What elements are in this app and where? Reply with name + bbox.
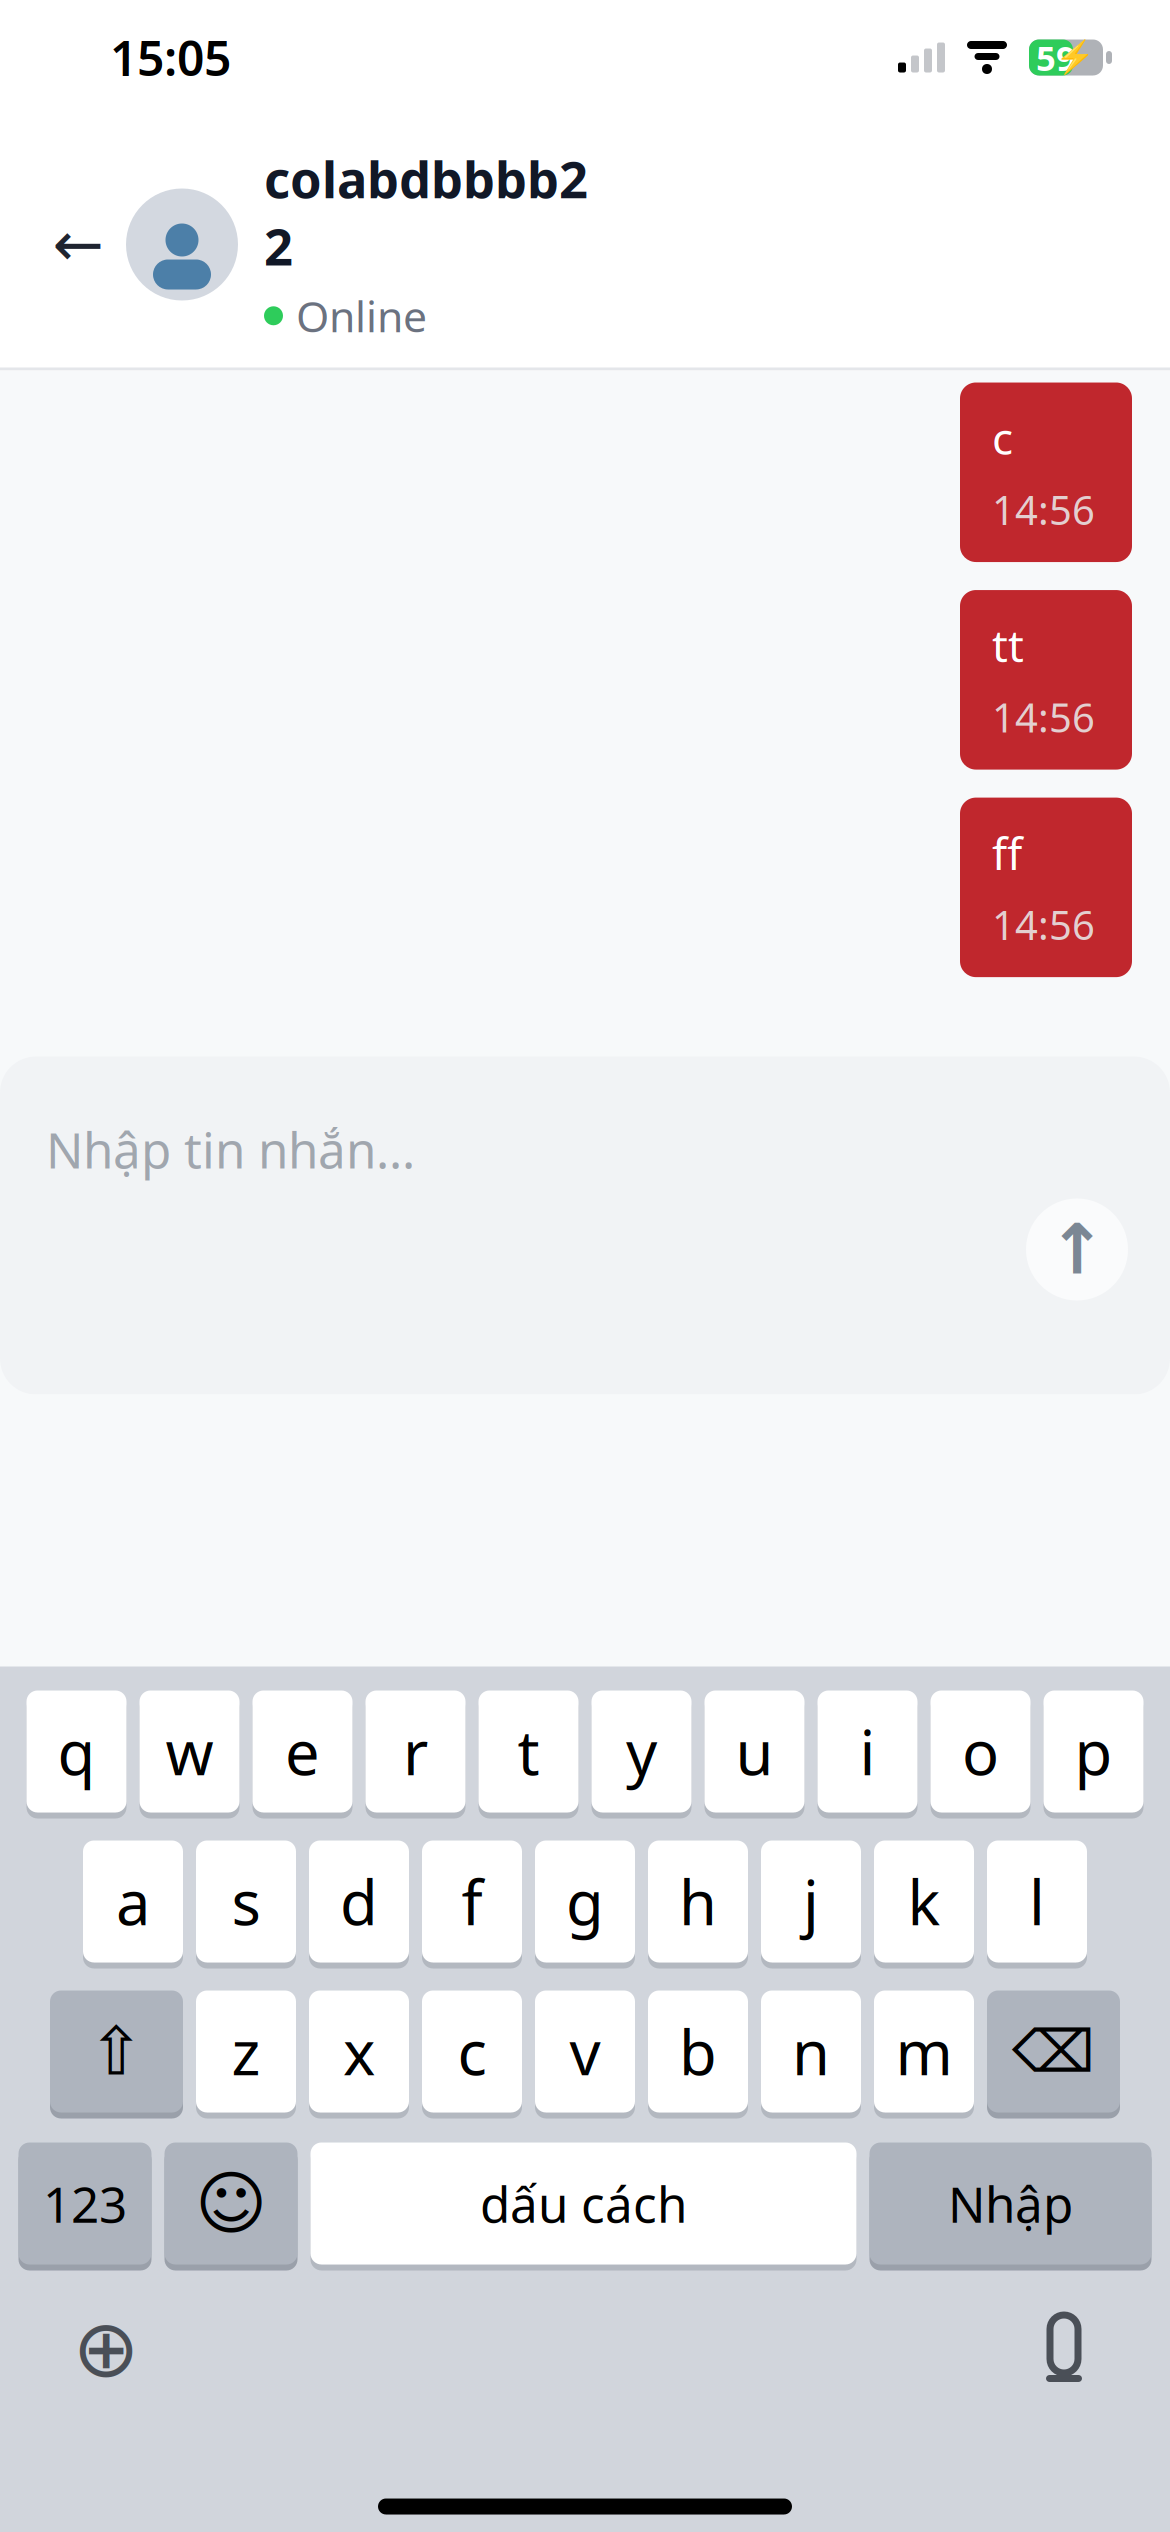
button[interactable]: s xyxy=(196,1840,296,1968)
staticText: u xyxy=(735,1711,773,1792)
button[interactable]: i xyxy=(817,1690,917,1818)
button[interactable]: l xyxy=(987,1840,1087,1968)
staticText: ← xyxy=(52,210,103,279)
staticText: f xyxy=(461,1861,482,1942)
staticText: m xyxy=(895,2011,952,2092)
staticText: a xyxy=(116,1861,150,1942)
staticText: w xyxy=(165,1711,213,1792)
staticText: c xyxy=(457,2011,486,2092)
staticText: tt xyxy=(992,616,1024,674)
button[interactable]: w xyxy=(139,1690,239,1818)
staticText: o xyxy=(962,1711,999,1792)
staticText: 15:05 xyxy=(110,26,231,89)
button[interactable]: Back xyxy=(30,196,126,292)
button[interactable]: Space xyxy=(310,2142,856,2270)
staticText: k xyxy=(907,1861,940,1942)
staticText: p xyxy=(1074,1711,1112,1792)
staticText: c xyxy=(992,408,1013,467)
button[interactable]: q xyxy=(26,1690,126,1818)
staticText: 123 xyxy=(43,2171,127,2236)
button[interactable]: v xyxy=(535,1990,635,2118)
staticText: 59 xyxy=(1036,34,1076,80)
staticText: Online xyxy=(296,287,427,344)
staticText: e xyxy=(285,1711,320,1792)
staticText: j xyxy=(803,1861,819,1942)
button[interactable]: a xyxy=(83,1840,183,1968)
button[interactable]: y xyxy=(591,1690,691,1818)
button[interactable]: r xyxy=(365,1690,465,1818)
staticText: ff xyxy=(992,824,1022,882)
button[interactable]: c xyxy=(422,1990,522,2118)
button[interactable]: Return xyxy=(869,2142,1151,2270)
button[interactable]: Numbers xyxy=(18,2142,151,2270)
button[interactable]: m xyxy=(874,1990,974,2118)
staticText: dấu cách xyxy=(480,2171,687,2236)
button[interactable]: x xyxy=(309,1990,409,2118)
staticText: Nhập tin nhắn... xyxy=(46,1116,415,1182)
button[interactable]: g xyxy=(535,1840,635,1968)
staticText: ⌫ xyxy=(1012,2018,1095,2085)
button[interactable]: f xyxy=(422,1840,522,1968)
staticText: x xyxy=(343,2011,375,2092)
button[interactable]: e xyxy=(252,1690,352,1818)
button[interactable]: t xyxy=(478,1690,578,1818)
staticText: g xyxy=(566,1861,604,1942)
button[interactable]: u xyxy=(704,1690,804,1818)
button[interactable]: Emoji xyxy=(164,2142,297,2270)
button[interactable]: Send xyxy=(1026,1198,1128,1300)
staticText: h xyxy=(679,1861,717,1942)
button[interactable]: z xyxy=(196,1990,296,2118)
staticText: ⇧ xyxy=(88,2014,144,2089)
button[interactable]: h xyxy=(648,1840,748,1968)
staticText: 14:56 xyxy=(992,690,1095,744)
staticText: q xyxy=(57,1711,95,1792)
staticText: d xyxy=(340,1861,378,1942)
staticText: v xyxy=(569,2011,600,2092)
staticText: n xyxy=(792,2011,830,2092)
staticText: l xyxy=(1029,1861,1045,1942)
staticText: ⊕ xyxy=(72,2303,139,2394)
staticText: colabdbbbb22 xyxy=(264,145,588,279)
button[interactable]: o xyxy=(930,1690,1030,1818)
button[interactable]: colabdbbbb22 xyxy=(126,145,636,344)
staticText: y xyxy=(626,1711,657,1792)
button[interactable]: Dictation xyxy=(1006,2290,1122,2406)
staticText: Nhập xyxy=(948,2171,1073,2236)
button[interactable]: n xyxy=(761,1990,861,2118)
button[interactable]: Shift xyxy=(50,1990,183,2118)
button[interactable]: Delete xyxy=(987,1990,1120,2118)
staticText: r xyxy=(403,1711,428,1792)
button[interactable]: d xyxy=(309,1840,409,1968)
staticText: ↑ xyxy=(1048,1210,1106,1289)
staticText: ☺ xyxy=(195,2164,267,2243)
staticText: 14:56 xyxy=(992,483,1095,536)
staticText: 14:56 xyxy=(992,898,1095,951)
staticText: z xyxy=(231,2011,260,2092)
staticText: ⚡ xyxy=(1055,39,1095,76)
button[interactable]: p xyxy=(1043,1690,1143,1818)
button[interactable]: j xyxy=(761,1840,861,1968)
staticText: s xyxy=(231,1861,260,1942)
staticText: t xyxy=(517,1711,539,1792)
staticText: b xyxy=(679,2011,717,2092)
button[interactable]: Next keyboard xyxy=(48,2290,164,2406)
staticText: i xyxy=(859,1711,875,1792)
button[interactable]: b xyxy=(648,1990,748,2118)
button[interactable]: k xyxy=(874,1840,974,1968)
